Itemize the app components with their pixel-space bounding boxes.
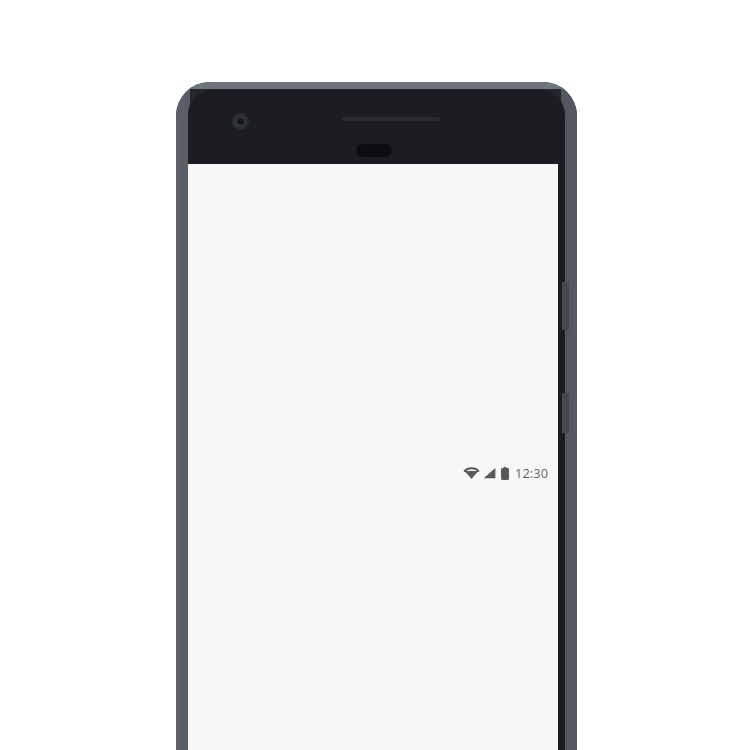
staticText: 12:30 — [515, 464, 549, 482]
